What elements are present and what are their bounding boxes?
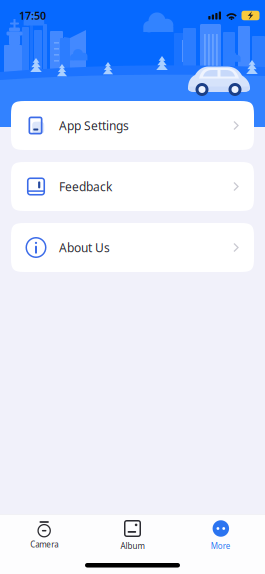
staticText: 17:50	[19, 8, 46, 23]
staticText: Feedback	[59, 178, 112, 194]
button[interactable]: More	[177, 515, 265, 556]
button[interactable]: App Settings	[11, 101, 254, 150]
staticText: App Settings	[59, 117, 129, 133]
button[interactable]: About Us	[11, 223, 254, 272]
button[interactable]: Album	[88, 515, 177, 556]
staticText: More	[211, 540, 231, 551]
staticText: Album	[120, 540, 144, 551]
staticText: About Us	[59, 239, 110, 255]
button[interactable]: Feedback	[11, 162, 254, 211]
staticText: Camera	[30, 539, 58, 550]
button[interactable]: Camera	[0, 517, 88, 555]
